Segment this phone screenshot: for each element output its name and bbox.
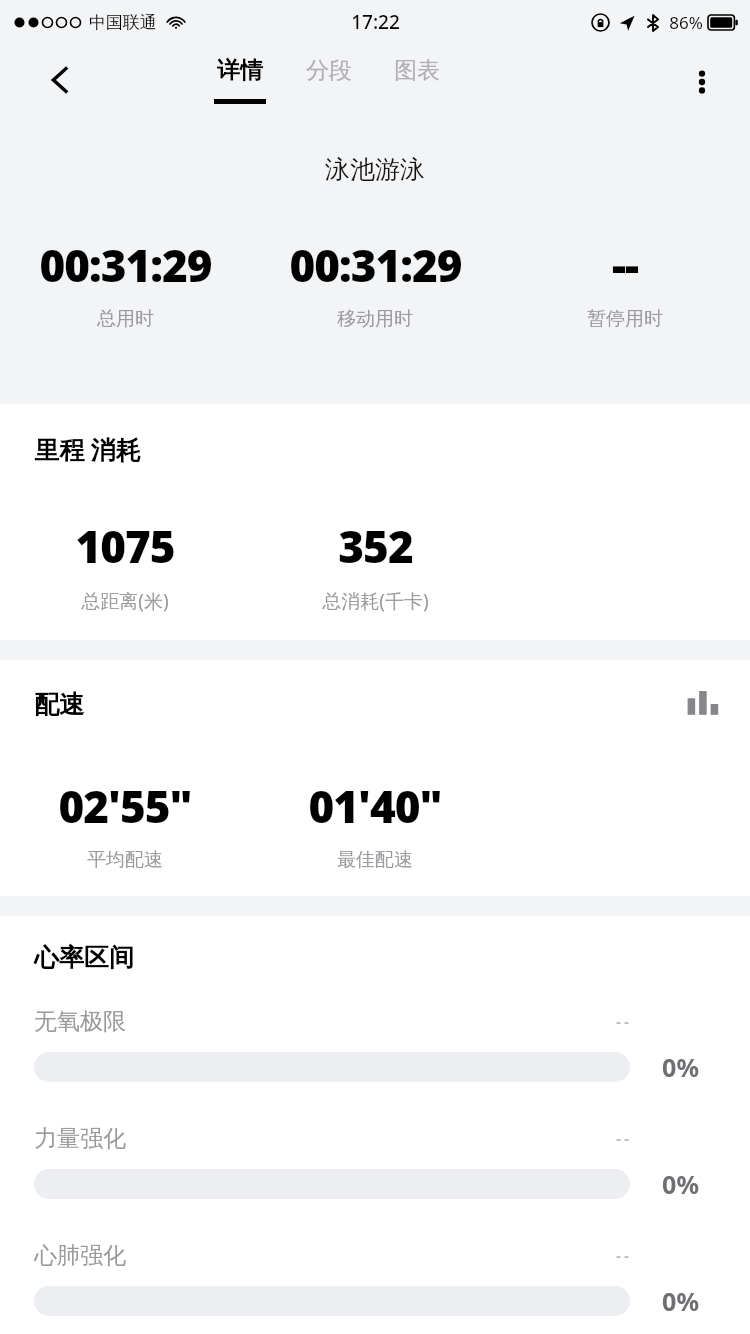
staticText: 暂停用时: [587, 307, 663, 331]
staticText: - -: [616, 1246, 629, 1265]
staticText: 总消耗(千卡): [322, 588, 429, 614]
button[interactable]: Back: [24, 44, 96, 116]
staticText: 详情: [217, 56, 263, 85]
staticText: 00:31:29: [39, 235, 212, 295]
staticText: 1075: [75, 516, 175, 576]
staticText: 无氧极限: [34, 1007, 126, 1036]
staticText: 总用时: [97, 307, 154, 331]
staticText: 平均配速: [87, 848, 163, 872]
staticText: - -: [616, 1129, 629, 1148]
staticText: 泳池游泳: [325, 154, 425, 185]
staticText: 力量强化: [34, 1124, 126, 1153]
button[interactable]: Pace chart: [680, 682, 724, 726]
staticText: 总距离(米): [81, 588, 169, 614]
staticText: 00:31:29: [289, 235, 462, 295]
staticText: 0%: [662, 1050, 699, 1084]
staticText: 分段: [306, 56, 352, 85]
staticText: 0%: [662, 1284, 699, 1318]
staticText: 心率区间: [34, 942, 134, 973]
staticText: 最佳配速: [337, 848, 413, 872]
staticText: 0%: [662, 1167, 699, 1201]
button[interactable]: 分段: [300, 52, 358, 103]
staticText: --: [612, 235, 638, 295]
staticText: 17:22: [351, 9, 400, 35]
staticText: 移动用时: [337, 307, 413, 331]
button[interactable]: More options: [668, 48, 736, 116]
staticText: 里程 消耗: [34, 432, 141, 466]
staticText: - -: [616, 1012, 629, 1031]
staticText: 配速: [34, 689, 84, 720]
staticText: 心肺强化: [34, 1241, 126, 1270]
staticText: 352: [338, 516, 413, 576]
staticText: 中国联通: [89, 12, 157, 33]
staticText: 02'55": [58, 776, 192, 836]
button[interactable]: 图表: [388, 52, 446, 103]
staticText: 86%: [669, 11, 703, 34]
staticText: 01'40": [308, 776, 442, 836]
button[interactable]: 详情: [208, 52, 272, 108]
staticText: 图表: [394, 56, 440, 85]
